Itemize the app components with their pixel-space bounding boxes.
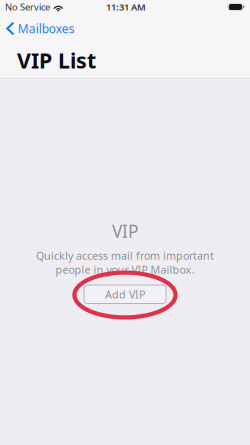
staticText: No Service — [5, 1, 50, 13]
staticText: Add VIP — [105, 287, 145, 301]
button[interactable]: Back to Mailboxes — [0, 14, 250, 40]
staticText: people in your VIP Mailbox. — [55, 262, 194, 277]
staticText: Quickly access mail from important — [36, 248, 214, 263]
button[interactable]: Add VIP — [84, 285, 166, 303]
staticText: Mailboxes — [18, 20, 75, 36]
staticText: VIP List — [17, 46, 96, 74]
staticText: VIP — [112, 219, 138, 242]
staticText: 11:31 AM — [106, 1, 146, 13]
